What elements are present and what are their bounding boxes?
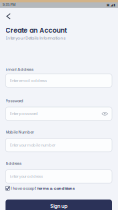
- button[interactable]: Enter password: [5, 107, 112, 120]
- button[interactable]: Enter your mobile number: [5, 138, 112, 152]
- staticText: 9:35 PM: [3, 2, 16, 7]
- staticText: Create an Account: [5, 26, 66, 35]
- staticText: Enter password: [10, 111, 38, 116]
- button[interactable]: Enter email address: [5, 74, 112, 87]
- button[interactable]: Enter your address: [5, 170, 112, 183]
- staticText: Mobile Number: [5, 129, 33, 135]
- button[interactable]: Sign up: [5, 199, 112, 210]
- staticText: Sign up: [50, 203, 67, 210]
- button[interactable]: Back: [0, 10, 30, 22]
- staticText: Enter email address: [10, 78, 47, 83]
- staticText: Email Address: [5, 67, 33, 72]
- staticText: ▣ ◢ ▮: [106, 3, 115, 7]
- button[interactable]: I have accept: [0, 185, 118, 192]
- staticText: Address: [5, 161, 21, 166]
- staticText: Password: [5, 98, 23, 103]
- staticText: I have accept: [10, 186, 37, 191]
- staticText: Enter your Details Informations: [5, 35, 65, 41]
- staticText: Terms & Conditions: [37, 186, 75, 191]
- staticText: Enter your address: [10, 174, 43, 179]
- staticText: Enter your mobile number: [10, 142, 55, 148]
